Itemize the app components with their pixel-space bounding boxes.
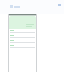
button[interactable] <box>10 30 36 35</box>
button[interactable] <box>10 35 36 40</box>
button[interactable] <box>9 16 36 29</box>
button[interactable] <box>10 45 36 50</box>
button[interactable] <box>10 40 36 45</box>
